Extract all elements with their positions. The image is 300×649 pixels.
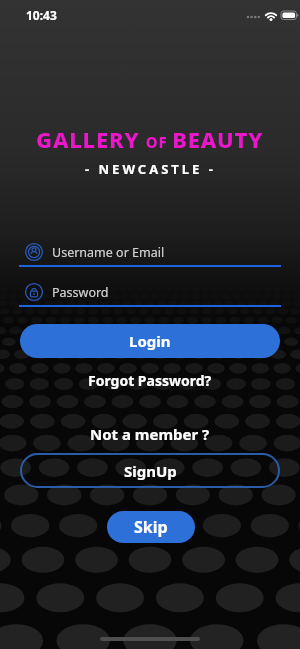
button[interactable]: Forgot Password? (0, 369, 300, 391)
staticText: Username or Email (52, 244, 165, 261)
staticText: Password (52, 284, 109, 301)
button[interactable]: Login (20, 324, 280, 358)
button[interactable]: Username or Email (19, 237, 281, 267)
staticText: Forgot Password? (88, 371, 212, 390)
staticText: Not a member ? (90, 424, 210, 444)
staticText: GALLERY OF BEAUTY (36, 124, 264, 154)
staticText: Login (129, 331, 171, 351)
button[interactable]: SignUp (20, 453, 280, 488)
staticText: 10:43 (26, 7, 57, 23)
staticText: SignUp (124, 461, 177, 481)
button[interactable]: Password (19, 277, 281, 307)
staticText: Skip (134, 516, 168, 538)
staticText: - NEWCASTLE - (85, 160, 216, 178)
button[interactable]: Skip (107, 511, 195, 543)
